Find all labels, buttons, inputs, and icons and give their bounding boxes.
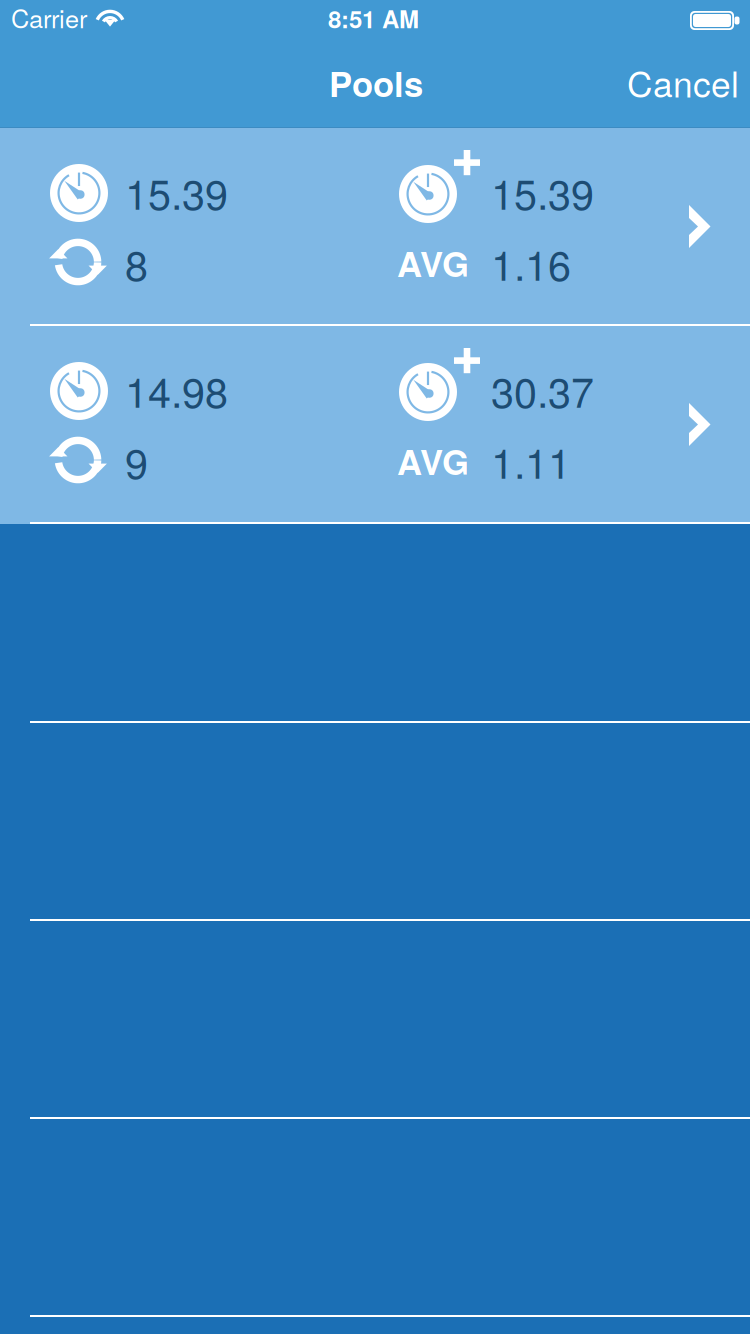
staticText: 8 xyxy=(125,233,148,292)
staticText: AVG xyxy=(397,436,469,486)
staticText: Cancel xyxy=(627,57,739,107)
staticText: 14.98 xyxy=(125,360,228,419)
button[interactable]: Cancel xyxy=(619,40,750,128)
staticText: 30.37 xyxy=(491,360,594,419)
staticText: 1.11 xyxy=(491,431,571,490)
staticText: 15.39 xyxy=(491,162,594,221)
button[interactable]: 14.98 xyxy=(0,326,750,524)
staticText: 9 xyxy=(125,431,148,490)
staticText: Pools xyxy=(329,58,423,108)
staticText: Carrier xyxy=(11,0,87,35)
staticText: 8:51 AM xyxy=(328,1,419,36)
button[interactable]: 15.39 xyxy=(0,128,750,326)
staticText: AVG xyxy=(397,238,469,288)
staticText: 1.16 xyxy=(491,233,571,292)
staticText: 15.39 xyxy=(125,162,228,221)
